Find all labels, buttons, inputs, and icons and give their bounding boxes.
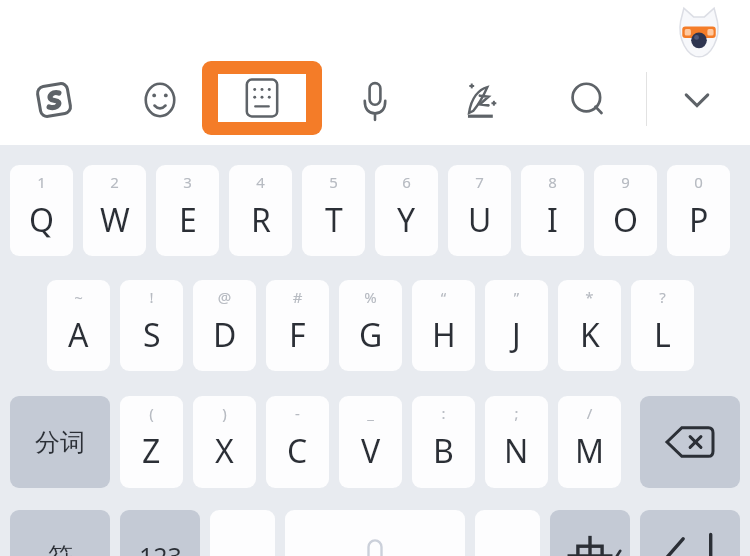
button[interactable]: - xyxy=(266,396,329,488)
button[interactable]: 1 xyxy=(10,165,73,256)
staticText: N xyxy=(504,429,529,473)
staticText: 2 xyxy=(83,172,146,263)
button[interactable]: Voice input xyxy=(339,62,411,138)
button[interactable]: ; xyxy=(485,396,548,488)
staticText: 4 xyxy=(229,172,292,263)
staticText: : xyxy=(412,403,475,495)
staticText: H xyxy=(432,313,456,357)
staticText: 0 xyxy=(667,172,730,263)
staticText: U xyxy=(468,198,492,242)
staticText: W xyxy=(100,198,130,242)
staticText: L xyxy=(654,313,671,357)
button[interactable]: 4 xyxy=(229,165,292,256)
staticText: ) xyxy=(193,403,256,495)
button[interactable]: * xyxy=(558,280,621,371)
button[interactable]: 分词 xyxy=(10,396,110,488)
button[interactable]: % xyxy=(339,280,402,371)
button[interactable]: 9 xyxy=(594,165,657,256)
button[interactable]: Search xyxy=(552,62,624,138)
button[interactable]: ” xyxy=(485,280,548,371)
staticText: X xyxy=(215,429,234,473)
button[interactable]: @ xyxy=(193,280,256,371)
staticText: 分词 xyxy=(35,427,85,458)
staticText: @ xyxy=(193,287,256,378)
staticText: ! xyxy=(120,287,183,378)
staticText: 3 xyxy=(156,172,219,263)
button[interactable]: Enter xyxy=(640,510,740,556)
staticText: S xyxy=(143,313,161,357)
staticText: # xyxy=(266,287,329,378)
button[interactable]: 8 xyxy=(521,165,584,256)
staticText: M xyxy=(575,429,605,473)
staticText: D xyxy=(213,313,237,357)
staticText: O xyxy=(613,198,638,242)
button[interactable]: Handwriting xyxy=(443,62,521,138)
staticText: B xyxy=(433,429,454,473)
button[interactable]: Keyboard xyxy=(202,61,322,135)
staticText: * xyxy=(558,287,621,378)
staticText: F xyxy=(289,313,306,357)
button[interactable]: Collapse keyboard xyxy=(662,62,732,138)
button[interactable]: ( xyxy=(120,396,183,488)
button[interactable]: Switch Chinese English xyxy=(550,510,630,556)
staticText: I xyxy=(547,198,558,242)
button[interactable]: ) xyxy=(193,396,256,488)
button[interactable]: ? xyxy=(631,280,694,371)
button[interactable]: _ xyxy=(339,396,402,488)
button[interactable]: Sogou input method xyxy=(18,62,90,138)
staticText: 符 xyxy=(48,541,73,556)
staticText: ” xyxy=(485,287,548,378)
button[interactable]: Backspace xyxy=(640,396,740,488)
staticText: 5 xyxy=(302,172,365,263)
staticText: Y xyxy=(397,198,416,242)
button[interactable]: “ xyxy=(412,280,475,371)
button[interactable]: ! xyxy=(120,280,183,371)
button[interactable]: Space xyxy=(285,510,465,556)
staticText: ~ xyxy=(47,287,110,378)
staticText: G xyxy=(359,313,383,357)
staticText: ; xyxy=(485,403,548,495)
staticText: 9 xyxy=(594,172,657,263)
staticText: _ xyxy=(339,403,402,495)
staticText: K xyxy=(580,313,600,357)
button[interactable]: 3 xyxy=(156,165,219,256)
staticText: R xyxy=(251,198,271,242)
button[interactable]: 123 xyxy=(120,510,200,556)
button[interactable]: # xyxy=(266,280,329,371)
staticText: E xyxy=(179,198,197,242)
button[interactable]: ~ xyxy=(47,280,110,371)
staticText: / xyxy=(558,403,621,495)
staticText: T xyxy=(325,198,343,242)
button[interactable]: 2 xyxy=(83,165,146,256)
button[interactable]: 符 xyxy=(10,510,110,556)
button[interactable]: 7 xyxy=(448,165,511,256)
staticText: Q xyxy=(29,198,54,242)
staticText: % xyxy=(339,287,402,378)
staticText: - xyxy=(266,403,329,495)
button[interactable]: 5 xyxy=(302,165,365,256)
staticText: C xyxy=(287,429,308,473)
button[interactable]: : xyxy=(412,396,475,488)
staticText: 8 xyxy=(521,172,584,263)
staticText: 123 xyxy=(139,539,182,556)
staticText: 7 xyxy=(448,172,511,263)
staticText: J xyxy=(512,313,521,357)
staticText: ? xyxy=(631,287,694,378)
staticText: “ xyxy=(412,287,475,378)
staticText: ( xyxy=(120,403,183,495)
button[interactable]: 0 xyxy=(667,165,730,256)
staticText: V xyxy=(361,429,381,473)
staticText: Z xyxy=(142,429,161,473)
button[interactable]: Profile avatar xyxy=(672,5,726,59)
staticText: 1 xyxy=(10,172,73,263)
staticText: P xyxy=(689,198,709,242)
staticText: A xyxy=(68,313,89,357)
staticText: 6 xyxy=(375,172,438,263)
button[interactable]: 6 xyxy=(375,165,438,256)
button[interactable]: / xyxy=(558,396,621,488)
button[interactable]: Emoji xyxy=(124,62,196,138)
